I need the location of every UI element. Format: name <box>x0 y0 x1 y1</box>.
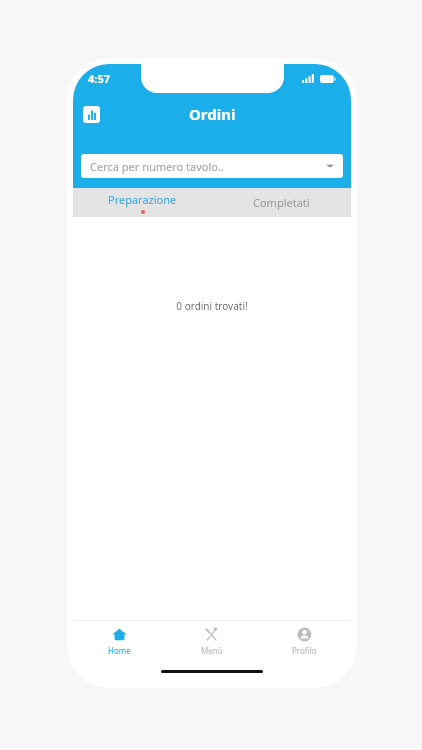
staticText: 4:57 <box>88 71 110 86</box>
staticText: Preparazione <box>108 192 177 207</box>
staticText: 0 ordini trovati! <box>176 299 248 313</box>
staticText: Completati <box>253 195 310 210</box>
button[interactable]: Cerca per numero tavolo.. <box>81 154 343 178</box>
staticText: Cerca per numero tavolo.. <box>90 159 326 174</box>
staticText: Ordini <box>189 104 236 124</box>
staticText: Home <box>108 645 131 656</box>
button[interactable]: Home <box>73 620 165 662</box>
button[interactable]: Completati <box>212 188 351 217</box>
button[interactable]: Menù <box>165 620 258 662</box>
button[interactable]: Statistiche <box>83 106 100 123</box>
staticText: Profilo <box>292 645 317 656</box>
button[interactable]: Preparazione <box>73 188 212 217</box>
staticText: Menù <box>201 645 223 656</box>
button[interactable]: Profilo <box>258 620 351 662</box>
